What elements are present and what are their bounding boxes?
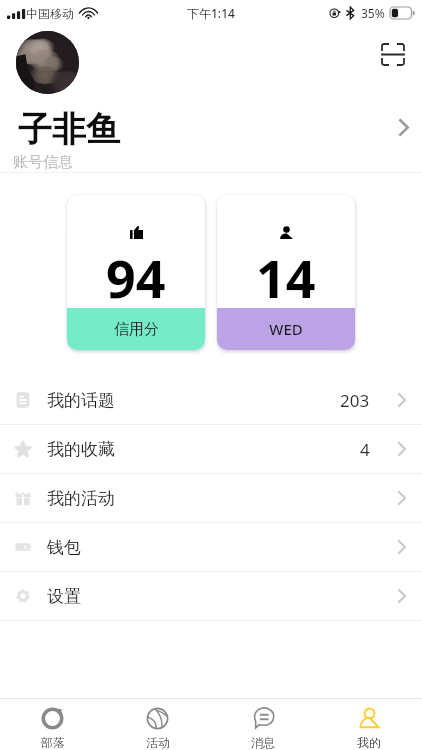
button[interactable]: 我的 xyxy=(316,707,422,750)
button[interactable]: 部落 xyxy=(0,707,105,750)
button[interactable]: 钱包 xyxy=(0,523,422,571)
button[interactable]: 消息 xyxy=(210,707,316,750)
button[interactable]: 14 xyxy=(217,195,355,350)
button[interactable]: 活动 xyxy=(105,707,210,750)
staticText: 下午1:14 xyxy=(187,5,235,21)
button[interactable]: Scan xyxy=(372,33,414,75)
staticText: 信用分 xyxy=(114,320,159,339)
button[interactable]: 我的收藏 xyxy=(0,425,422,473)
staticText: 活动 xyxy=(146,735,170,750)
staticText: 设置 xyxy=(47,586,81,607)
staticText: 中国移动 xyxy=(26,6,74,21)
staticText: 我的收藏 xyxy=(47,439,115,460)
staticText: 4 xyxy=(360,438,370,461)
staticText: 我的活动 xyxy=(47,488,115,509)
staticText: 我的 xyxy=(357,735,381,750)
staticText: WED xyxy=(269,319,303,339)
staticText: 子非鱼 xyxy=(18,108,120,151)
button[interactable]: 我的话题 xyxy=(0,376,422,424)
staticText: 消息 xyxy=(251,735,275,750)
button[interactable]: Avatar xyxy=(16,31,79,94)
staticText: 部落 xyxy=(41,735,65,750)
staticText: 94 xyxy=(106,242,166,313)
staticText: 我的话题 xyxy=(47,390,115,411)
button[interactable]: 我的活动 xyxy=(0,474,422,522)
staticText: 账号信息 xyxy=(13,153,73,172)
staticText: 35% xyxy=(361,5,385,21)
staticText: 钱包 xyxy=(47,537,81,558)
button[interactable]: 设置 xyxy=(0,572,422,620)
staticText: 14 xyxy=(256,242,316,313)
button[interactable]: 子非鱼 xyxy=(0,106,422,172)
button[interactable]: 94 xyxy=(67,195,205,350)
staticText: 203 xyxy=(340,389,370,412)
